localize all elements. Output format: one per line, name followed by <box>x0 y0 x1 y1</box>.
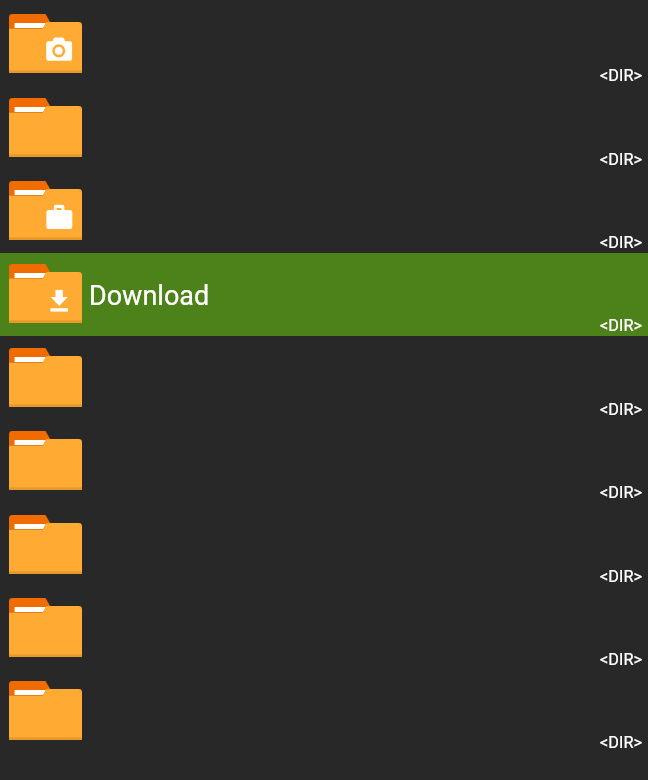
button[interactable]: Open folder DCIM <box>0 3 648 86</box>
other: Pictures folder <box>9 598 82 657</box>
staticText: <DIR> <box>600 150 642 169</box>
other: Podcasts folder <box>9 681 82 740</box>
other: Notifications folder <box>9 515 82 574</box>
staticText: <DIR> <box>600 400 642 419</box>
staticText: <DIR> <box>600 483 642 502</box>
staticText: Download <box>89 280 210 312</box>
other: Download folder <box>9 264 82 323</box>
button[interactable]: Open folder Alarms <box>0 86 648 170</box>
staticText: <DIR> <box>600 66 642 85</box>
other: Alarms folder <box>9 98 82 157</box>
staticText: <DIR> <box>600 650 642 669</box>
button[interactable]: Open folder Notifications <box>0 503 648 587</box>
button[interactable]: Open folder Music <box>0 420 648 503</box>
button[interactable]: Open folder Pictures <box>0 587 648 670</box>
staticText: <DIR> <box>600 733 642 752</box>
staticText: <DIR> <box>600 567 642 586</box>
staticText: <DIR> <box>600 233 642 252</box>
other: DCIM folder <box>9 14 82 73</box>
other: Movies folder <box>9 348 82 407</box>
other: Music folder <box>9 431 82 490</box>
button[interactable]: Open folder Podcasts <box>0 670 648 753</box>
button[interactable]: Open folder Movies <box>0 336 648 420</box>
other: Android folder <box>9 181 82 240</box>
button[interactable]: Open folder Android <box>0 170 648 253</box>
button[interactable]: Open folder Download <box>0 253 648 336</box>
staticText: <DIR> <box>600 316 642 335</box>
